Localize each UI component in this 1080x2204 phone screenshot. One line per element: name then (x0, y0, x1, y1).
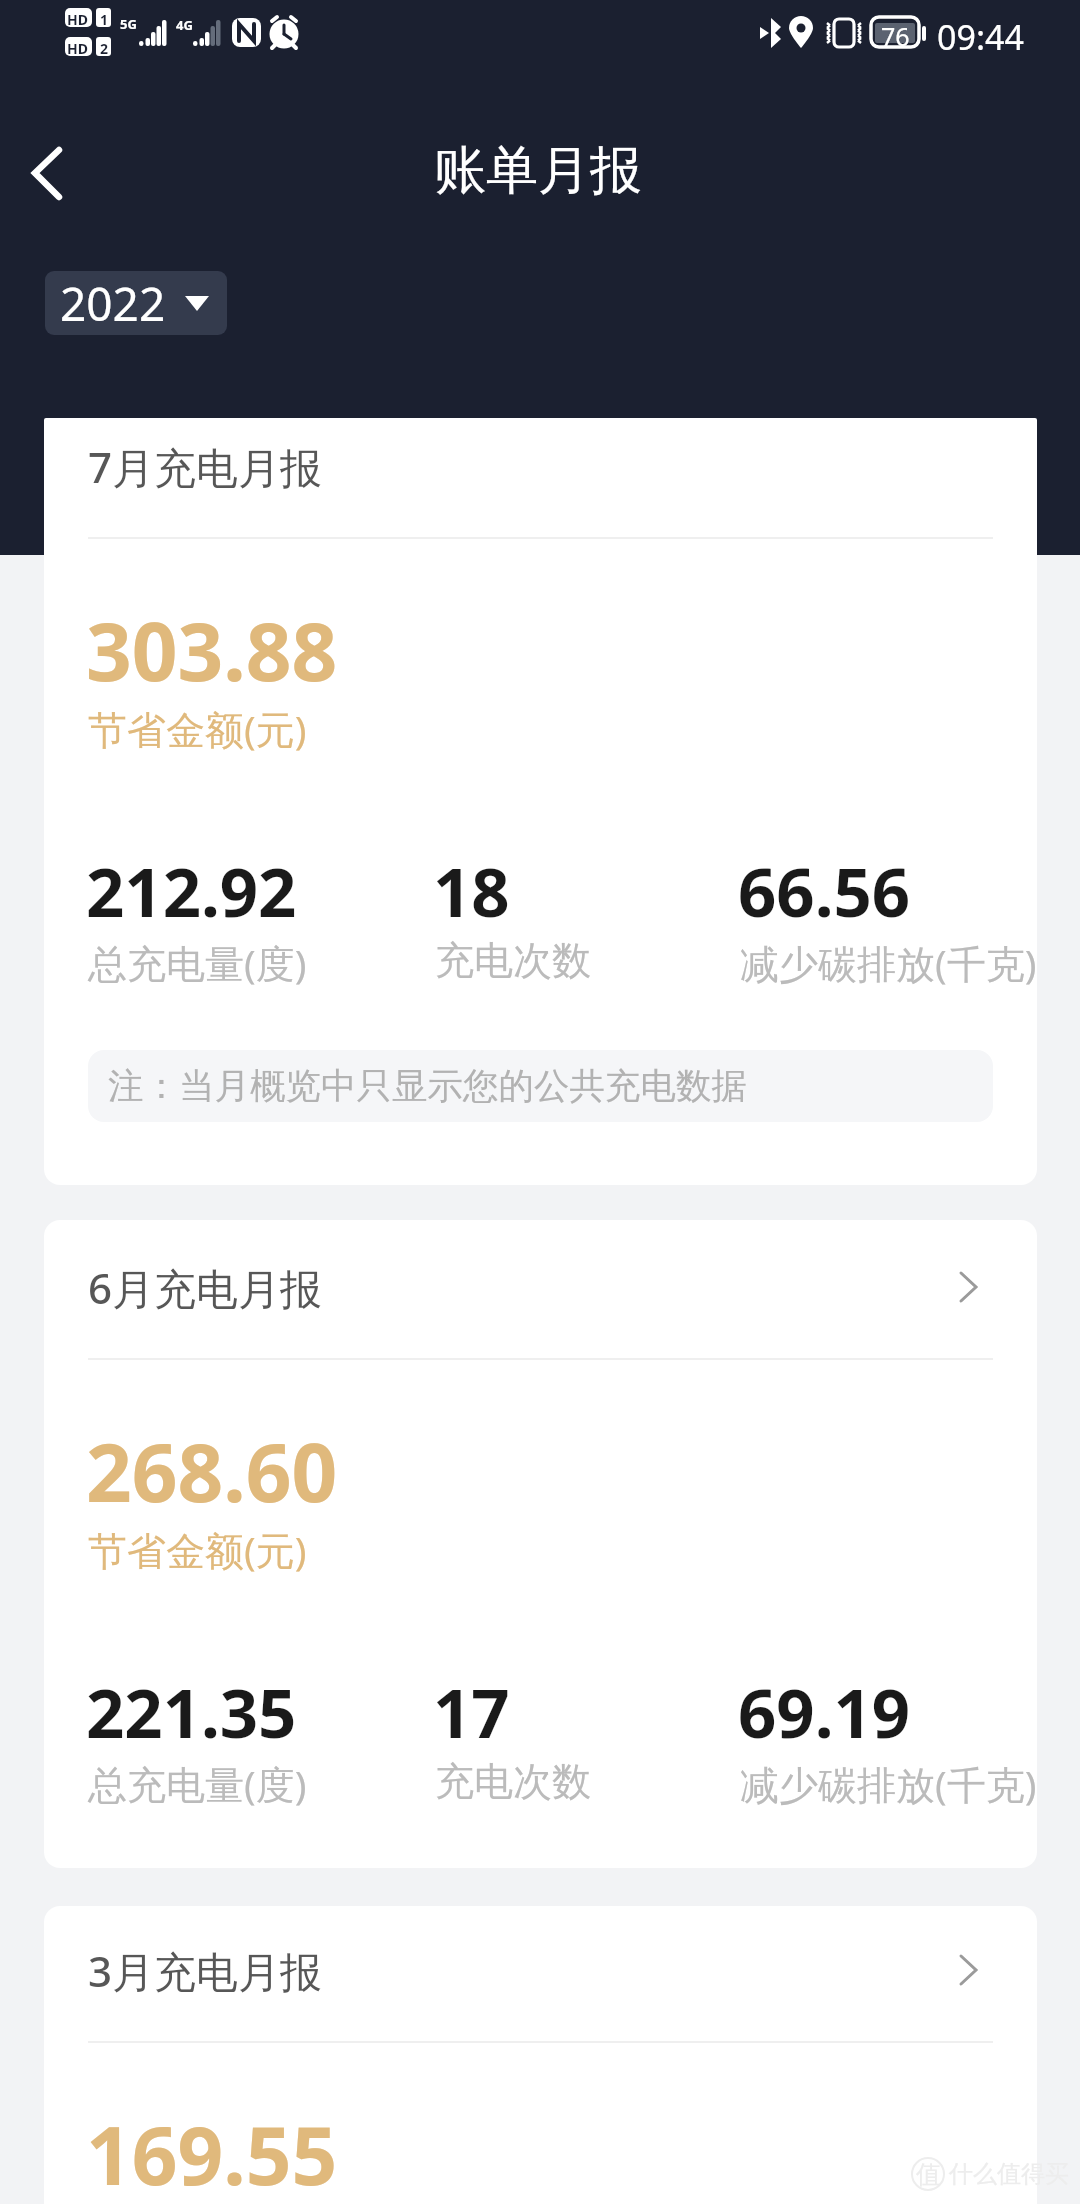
staticText: 268.60 (86, 1416, 338, 1525)
staticText: 5G (120, 15, 137, 33)
staticText: 账单月报 (434, 138, 642, 204)
button[interactable]: 3月充电月报 (44, 1906, 1037, 2204)
staticText: 注：当月概览中只显示您的公共充电数据 (108, 1064, 747, 1109)
staticText: 减少碳排放(千克) (740, 936, 1037, 989)
staticText: 3月充电月报 (88, 1942, 323, 1999)
staticText: 节省金额(元) (88, 702, 307, 755)
staticText: 09:44 (937, 14, 1024, 60)
staticText: 76 (881, 19, 910, 53)
staticText: 212.92 (86, 845, 297, 936)
staticText: 2022 (60, 272, 166, 335)
staticText: 总充电量(度) (88, 936, 307, 989)
button[interactable]: 6月充电月报 (44, 1220, 1037, 1868)
staticText: 充电次数 (435, 936, 591, 985)
staticText: 303.88 (86, 595, 338, 704)
staticText: 充电次数 (435, 1757, 591, 1806)
staticText: 节省金额(元) (88, 1523, 307, 1576)
staticText: 值 (916, 2159, 941, 2190)
staticText: 69.19 (738, 1666, 911, 1757)
staticText: 66.56 (738, 845, 911, 936)
staticText: 18 (433, 845, 510, 936)
staticText: 17 (433, 1666, 510, 1757)
staticText: 169.55 (86, 2099, 338, 2204)
button[interactable]: Open monthly report (938, 1257, 998, 1317)
staticText: 7月充电月报 (88, 438, 323, 495)
staticText: 221.35 (86, 1666, 297, 1757)
staticText: 6月充电月报 (88, 1259, 323, 1316)
staticText: 2 (100, 39, 109, 58)
staticText: HD (67, 10, 88, 29)
staticText: 总充电量(度) (88, 1757, 307, 1810)
staticText: 什么值得买 (949, 2159, 1069, 2189)
button[interactable]: 7月充电月报 (44, 418, 1037, 1185)
staticText: 1 (100, 10, 109, 29)
button[interactable]: 2022 (45, 271, 227, 335)
staticText: 减少碳排放(千克) (740, 1757, 1037, 1810)
button[interactable]: Open monthly report (938, 1940, 998, 2000)
staticText: 4G (176, 16, 193, 34)
staticText: HD (67, 39, 88, 58)
button[interactable]: Back (0, 130, 110, 216)
